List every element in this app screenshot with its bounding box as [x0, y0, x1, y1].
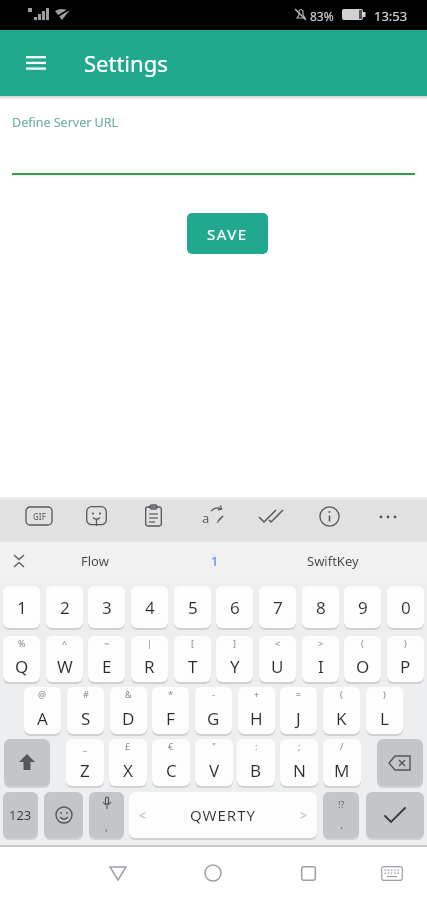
button[interactable]: 2	[46, 586, 83, 628]
staticText: )	[383, 688, 386, 700]
staticText: I	[318, 655, 324, 678]
button[interactable]	[44, 792, 83, 838]
staticText: "	[212, 740, 216, 752]
button[interactable]: "	[195, 739, 233, 786]
button[interactable]: ;	[280, 739, 318, 786]
staticText: _	[83, 740, 87, 752]
button[interactable]: QWERTY	[129, 792, 317, 838]
button[interactable]: +	[238, 687, 275, 734]
staticText: >	[318, 637, 324, 649]
button[interactable]	[258, 507, 284, 525]
button[interactable]	[197, 857, 229, 889]
button[interactable]: *	[152, 687, 189, 734]
staticText: a	[202, 509, 210, 527]
button[interactable]: 8	[302, 586, 339, 628]
button[interactable]: €	[152, 739, 190, 786]
staticText: £	[125, 740, 131, 752]
staticText: E	[102, 655, 112, 678]
staticText: 5	[188, 596, 198, 619]
button[interactable]: >	[302, 636, 339, 682]
button[interactable]: 1	[3, 586, 40, 628]
button[interactable]: (	[344, 636, 381, 682]
button[interactable]: 7	[259, 586, 296, 628]
button[interactable]: Define Server URL	[12, 100, 415, 176]
staticText: Y	[230, 655, 240, 678]
button[interactable]: @	[24, 687, 61, 734]
staticText: .	[340, 817, 343, 832]
staticText: G	[207, 707, 220, 730]
staticText: <	[275, 637, 281, 649]
button[interactable]: [	[174, 636, 211, 682]
staticText: <	[139, 807, 146, 823]
staticText: +	[254, 688, 260, 700]
button[interactable]: SAVE	[187, 213, 268, 254]
button[interactable]	[16, 47, 56, 79]
button[interactable]: 0	[387, 586, 424, 628]
button[interactable]: 123	[3, 792, 38, 838]
staticText: SAVE	[207, 224, 248, 244]
button[interactable]: |	[131, 636, 168, 682]
staticText: Z	[80, 759, 90, 782]
staticText: #	[83, 688, 89, 700]
button[interactable]: %	[3, 636, 40, 682]
button[interactable]: _	[66, 739, 104, 786]
button[interactable]	[377, 739, 423, 786]
button[interactable]: )	[366, 687, 403, 734]
staticText: 4	[145, 596, 155, 619]
button[interactable]	[292, 857, 324, 889]
staticText: P	[400, 655, 411, 678]
staticText: &	[125, 688, 132, 700]
staticText: O	[356, 655, 370, 678]
staticText: W	[57, 655, 73, 678]
button[interactable]: 1	[160, 541, 270, 581]
button[interactable]: !?	[323, 792, 359, 838]
staticText: X	[123, 759, 133, 782]
button[interactable]: ]	[216, 636, 253, 682]
button[interactable]	[366, 792, 424, 838]
button[interactable]: ~	[88, 636, 125, 682]
button[interactable]: £	[109, 739, 147, 786]
button[interactable]: ,	[89, 792, 124, 838]
staticText: 1	[211, 552, 219, 570]
staticText: SwiftKey	[307, 552, 359, 570]
staticText: %	[18, 637, 26, 649]
staticText: ^	[62, 637, 68, 649]
button[interactable]	[378, 514, 398, 520]
staticText: /	[340, 740, 344, 752]
button[interactable]: :	[237, 739, 275, 786]
button[interactable]: 5	[174, 586, 211, 628]
button[interactable]	[319, 506, 340, 527]
staticText: C	[166, 759, 177, 782]
button[interactable]	[145, 505, 162, 527]
staticText: GIF	[33, 511, 46, 522]
staticText: R	[144, 655, 155, 678]
staticText: )	[404, 637, 407, 649]
button[interactable]: 9	[344, 586, 381, 628]
button[interactable]: =	[280, 687, 317, 734]
button[interactable]: Flow	[40, 541, 150, 581]
button[interactable]: (	[323, 687, 360, 734]
button[interactable]: -	[195, 687, 232, 734]
button[interactable]: SwiftKey	[278, 541, 388, 581]
button[interactable]: &	[110, 687, 147, 734]
button[interactable]: a	[201, 505, 225, 527]
button[interactable]: 3	[88, 586, 125, 628]
staticText: 83%	[310, 8, 334, 24]
staticText: 1	[17, 596, 27, 619]
staticText: U	[271, 655, 284, 678]
button[interactable]	[4, 739, 50, 786]
button[interactable]	[376, 857, 408, 889]
button[interactable]: GIF	[26, 507, 52, 525]
button[interactable]: 4	[131, 586, 168, 628]
button[interactable]: /	[323, 739, 361, 786]
button[interactable]: <	[259, 636, 296, 682]
button[interactable]: 6	[216, 586, 253, 628]
staticText: 6	[230, 596, 240, 619]
button[interactable]: #	[67, 687, 104, 734]
staticText: 8	[316, 596, 326, 619]
button[interactable]: )	[387, 636, 424, 682]
button[interactable]: ^	[46, 636, 83, 682]
staticText: (	[361, 637, 364, 649]
button[interactable]	[86, 506, 107, 527]
button[interactable]	[102, 857, 134, 889]
